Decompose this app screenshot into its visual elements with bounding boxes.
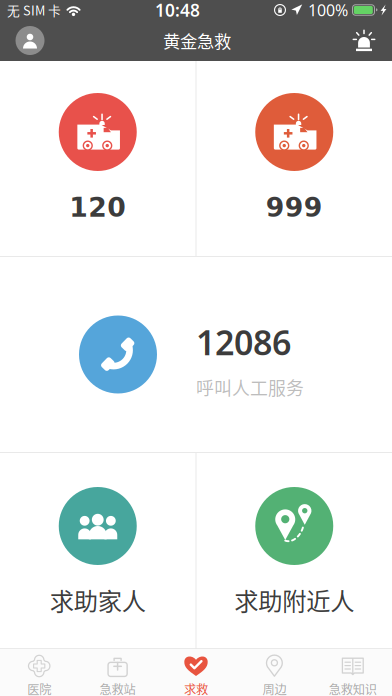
button[interactable]: 999 [196,61,392,256]
staticText: 求救 [184,680,208,696]
button[interactable]: 急救站 [78,649,157,696]
staticText: 12086 [196,319,291,365]
staticText: 无 SIM 卡 [7,1,61,19]
staticText: 急救站 [100,680,136,696]
button[interactable]: 求助家人 [0,453,195,648]
staticText: 呼叫人工服务 [196,374,304,400]
button[interactable]: 急救知识 [314,649,392,696]
button[interactable]: 求救 [157,649,235,696]
staticText: 黄金急救 [163,28,231,53]
staticText: 周边 [262,680,286,696]
button[interactable]: 120 [0,61,195,256]
button[interactable]: 求助附近人 [196,453,392,648]
button[interactable]: 医院 [0,649,78,696]
staticText: 10:48 [155,0,200,21]
button[interactable]: 警报 [342,20,386,61]
staticText: 120 [69,192,126,223]
button[interactable]: 个人中心 [8,20,52,61]
button[interactable]: 12086 [0,257,392,452]
staticText: 求助家人 [50,582,146,617]
button[interactable]: 周边 [235,649,314,696]
staticText: 100% [308,0,348,21]
staticText: 医院 [27,680,51,696]
staticText: 999 [266,192,323,223]
staticText: 求助附近人 [234,582,354,617]
staticText: 急救知识 [329,680,377,696]
